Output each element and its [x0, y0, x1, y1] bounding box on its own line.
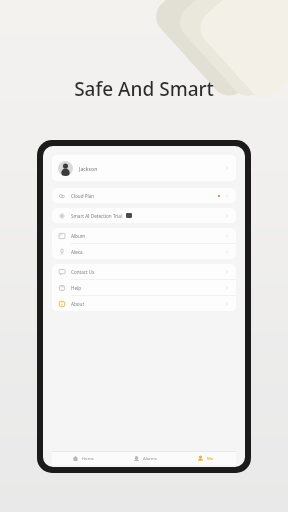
- staticText: Cloud Plan: [71, 193, 95, 199]
- staticText: Contact Us: [71, 269, 95, 275]
- staticText: Help: [71, 285, 82, 291]
- button[interactable]: Me: [175, 452, 236, 465]
- button[interactable]: Jackson: [52, 155, 236, 181]
- staticText: Alarms: [143, 456, 157, 462]
- button[interactable]: Alarms: [114, 452, 175, 465]
- staticText: Safe And Smart: [0, 76, 288, 102]
- button[interactable]: Home: [52, 452, 114, 465]
- button[interactable]: Smart AI Detection Trial: [52, 208, 236, 223]
- button[interactable]: Cloud Plan: [52, 188, 236, 203]
- staticText: Jackson: [79, 165, 98, 172]
- button[interactable]: Alexa: [52, 244, 236, 259]
- button[interactable]: Contact Us: [52, 264, 236, 279]
- staticText: Me: [207, 456, 214, 462]
- staticText: Home: [82, 456, 94, 462]
- staticText: Alexa: [71, 249, 83, 255]
- staticText: Album: [71, 233, 86, 239]
- button[interactable]: About: [52, 296, 236, 311]
- staticText: About: [71, 301, 85, 307]
- button[interactable]: Album: [52, 228, 236, 243]
- button[interactable]: Help: [52, 280, 236, 295]
- staticText: Smart AI Detection Trial: [71, 213, 123, 219]
